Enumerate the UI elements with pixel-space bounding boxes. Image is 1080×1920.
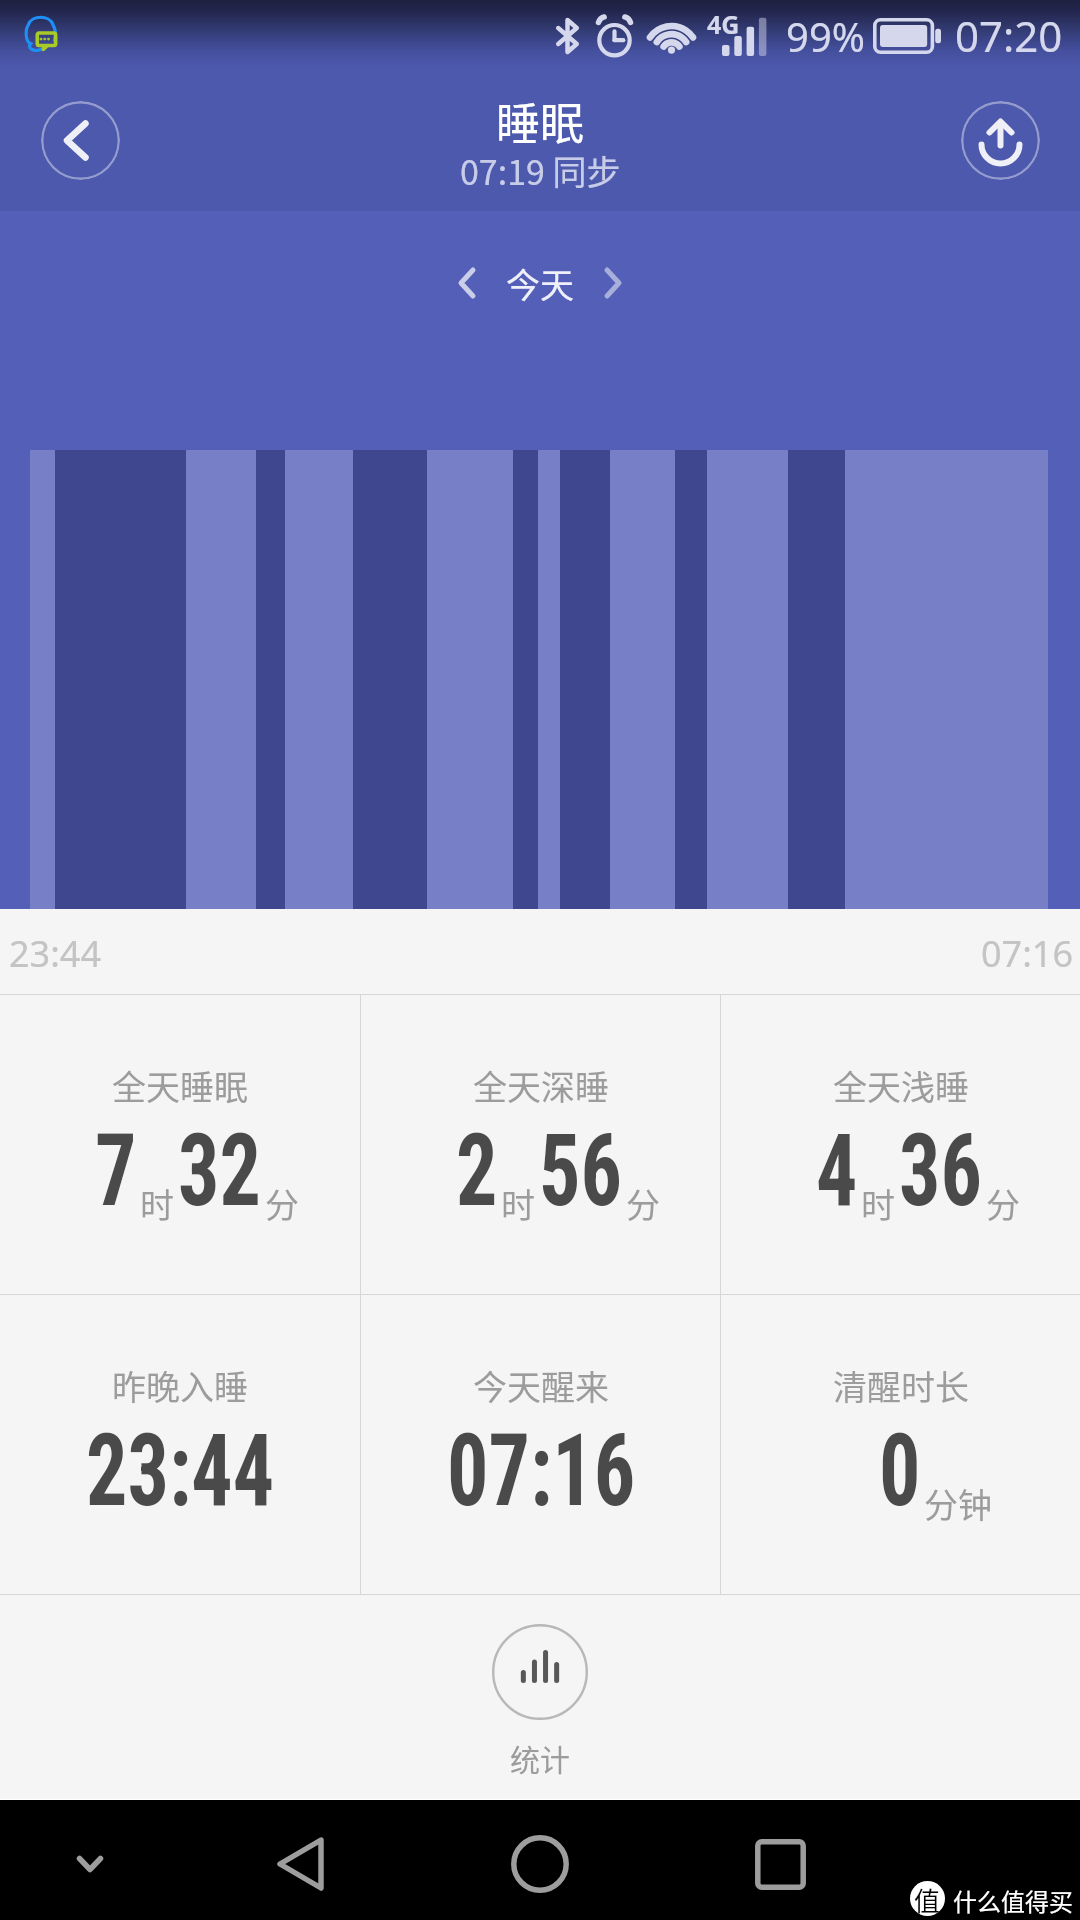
button[interactable]: 统计 (0, 1595, 1080, 1799)
staticText: 2 (456, 1112, 498, 1229)
staticText: 值 (914, 1881, 941, 1916)
staticText: 23:44 (9, 929, 102, 978)
staticText: 0 (879, 1412, 921, 1529)
staticText: 4 (816, 1112, 858, 1229)
staticText: 时 (140, 1179, 174, 1228)
staticText: 99% (786, 9, 865, 63)
staticText: 分钟 (924, 1479, 992, 1528)
staticText: 时 (501, 1179, 535, 1228)
button[interactable]: Back (264, 1828, 336, 1900)
button[interactable]: 全天睡眠 (0, 995, 360, 1294)
staticText: 分 (265, 1179, 299, 1228)
staticText: 昨晚入睡 (112, 1361, 248, 1410)
staticText: 今天 (506, 259, 574, 308)
button[interactable]: Next day (590, 255, 636, 311)
staticText: 07:20 (955, 7, 1063, 64)
staticText: 07:16 (447, 1412, 636, 1529)
staticText: 统计 (510, 1736, 570, 1779)
staticText: 分 (626, 1179, 660, 1228)
button[interactable]: Hide keyboard (54, 1828, 126, 1900)
staticText: 36 (899, 1112, 983, 1229)
button[interactable]: Previous day (444, 255, 490, 311)
button[interactable]: Share (961, 101, 1040, 180)
button[interactable]: Back (41, 101, 120, 180)
button[interactable]: Recent apps (744, 1828, 816, 1900)
staticText: 23:44 (86, 1412, 275, 1529)
button[interactable]: 昨晚入睡 (0, 1295, 360, 1594)
staticText: 全天睡眠 (112, 1061, 248, 1110)
staticText: 今天醒来 (473, 1361, 609, 1410)
button[interactable]: 今天醒来 (361, 1295, 720, 1594)
button[interactable]: Home (504, 1828, 576, 1900)
staticText: 什么值得买 (953, 1883, 1073, 1918)
button[interactable]: 清醒时长 (721, 1295, 1080, 1594)
staticText: 4G (707, 7, 740, 41)
staticText: 分 (986, 1179, 1020, 1228)
staticText: 32 (178, 1112, 262, 1229)
staticText: 睡眠 (496, 89, 584, 153)
button[interactable]: 全天深睡 (361, 995, 720, 1294)
button[interactable]: 全天浅睡 (721, 995, 1080, 1294)
staticText: 全天浅睡 (833, 1061, 969, 1110)
staticText: 时 (861, 1179, 895, 1228)
staticText: 07:16 (981, 929, 1074, 978)
staticText: 全天深睡 (473, 1061, 609, 1110)
staticText: 7 (95, 1112, 137, 1229)
staticText: 07:19 同步 (460, 146, 621, 195)
staticText: 56 (539, 1112, 623, 1229)
staticText: 清醒时长 (833, 1361, 969, 1410)
